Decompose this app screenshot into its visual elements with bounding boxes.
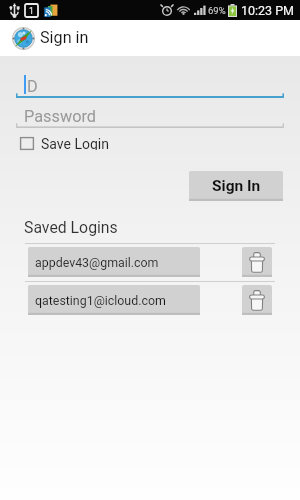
button[interactable]: qatesting1@icloud.com	[28, 285, 200, 315]
staticText: Sign In	[212, 177, 261, 195]
button[interactable]: Save Login	[20, 136, 109, 150]
staticText: Saved Logins	[24, 218, 118, 237]
staticText: 1	[29, 6, 34, 16]
button[interactable]: Delete saved login	[242, 247, 272, 277]
staticText: qatesting1@icloud.com	[35, 293, 166, 308]
staticText: 69%	[208, 5, 226, 16]
staticText: Password	[24, 107, 96, 126]
button[interactable]: Password	[16, 100, 284, 128]
staticText: 10:23 PM	[241, 3, 295, 18]
button[interactable]: Sign In	[189, 171, 283, 201]
staticText: appdev43@gmail.com	[35, 255, 159, 270]
button[interactable]: appdev43@gmail.com	[28, 247, 200, 277]
button[interactable]: Sign in	[0, 20, 300, 56]
staticText: Sign in	[40, 28, 89, 47]
button[interactable]: D	[16, 68, 284, 98]
staticText: Save Login	[41, 136, 109, 150]
staticText: D	[27, 77, 38, 96]
button[interactable]: Delete saved login	[242, 285, 272, 315]
